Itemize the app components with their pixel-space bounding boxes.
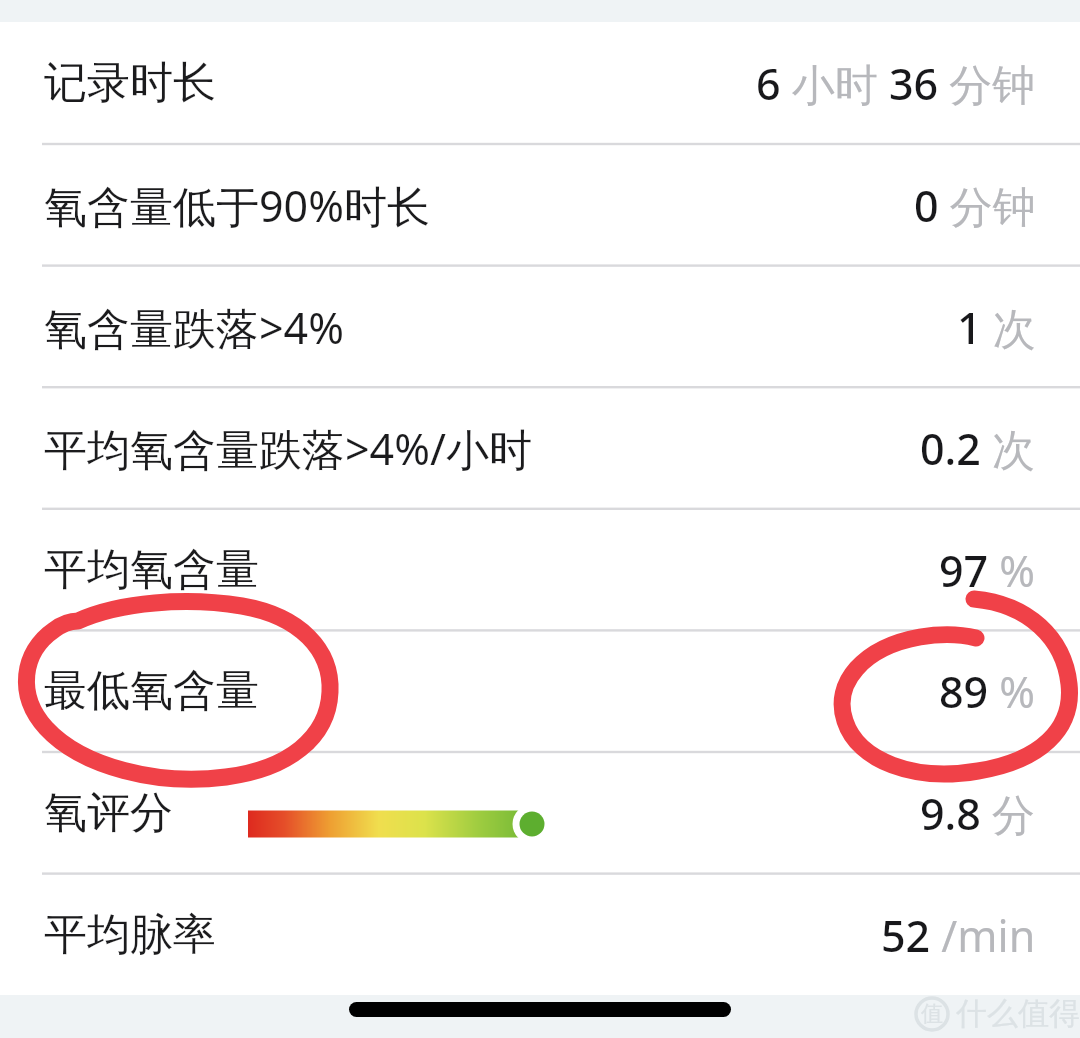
staticText: 氧评分 <box>44 786 173 840</box>
staticText: 97 % <box>939 541 1036 600</box>
staticText: 氧含量低于90%时长 <box>44 176 430 235</box>
staticText: 记录时长 <box>44 56 216 110</box>
staticText: 平均氧含量跌落>4%/小时 <box>44 419 532 478</box>
staticText: 89 % <box>939 662 1036 721</box>
button[interactable]: 平均脉率 <box>0 874 1080 996</box>
staticText: 平均脉率 <box>44 908 216 962</box>
other: 氧评分刻度 <box>248 804 552 844</box>
staticText: 52 /min <box>881 906 1036 965</box>
button[interactable]: 记录时长 <box>0 22 1080 144</box>
staticText: 0 分钟 <box>914 176 1036 235</box>
button[interactable]: 平均氧含量 <box>0 509 1080 631</box>
staticText: 什么值得买 <box>956 994 1080 1033</box>
staticText: 0.2 次 <box>920 419 1036 478</box>
button[interactable]: 氧含量跌落>4% <box>0 266 1080 388</box>
other: Home indicator <box>349 1002 731 1017</box>
staticText: 1 次 <box>957 298 1036 357</box>
staticText: 最低氧含量 <box>44 664 259 718</box>
staticText: 6 小时 36 分钟 <box>756 54 1036 113</box>
button[interactable]: 氧含量低于90%时长 <box>0 144 1080 266</box>
button[interactable]: 平均氧含量跌落>4%/小时 <box>0 387 1080 509</box>
staticText: 9.8 分 <box>920 784 1036 843</box>
staticText: 氧含量跌落>4% <box>44 298 344 357</box>
button[interactable]: 氧评分 <box>0 752 1080 874</box>
staticText: 值 <box>921 1000 943 1028</box>
button[interactable]: 最低氧含量 <box>0 630 1080 752</box>
staticText: 平均氧含量 <box>44 543 259 597</box>
